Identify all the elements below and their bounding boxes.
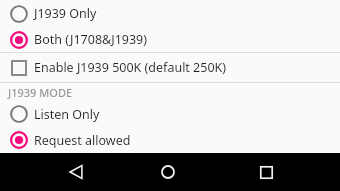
button[interactable]: Request allowed bbox=[0, 127, 340, 153]
staticText: Enable J1939 500K (default 250K) bbox=[34, 59, 227, 76]
staticText: J1939 MODE bbox=[8, 85, 73, 100]
staticText: J1939 Only bbox=[34, 5, 97, 22]
button[interactable]: Enable J1939 500K (default 250K) bbox=[0, 53, 340, 82]
button[interactable]: Home bbox=[148, 153, 188, 191]
button[interactable]: Listen Only bbox=[0, 101, 340, 127]
button[interactable]: J1939 Only bbox=[0, 0, 340, 27]
staticText: Listen Only bbox=[34, 106, 100, 123]
button[interactable]: Back bbox=[56, 153, 96, 191]
staticText: Request allowed bbox=[34, 132, 131, 149]
button[interactable]: Recent apps bbox=[246, 153, 286, 191]
button[interactable]: Both (J1708&J1939) bbox=[0, 27, 340, 52]
staticText: Both (J1708&J1939) bbox=[34, 31, 147, 48]
